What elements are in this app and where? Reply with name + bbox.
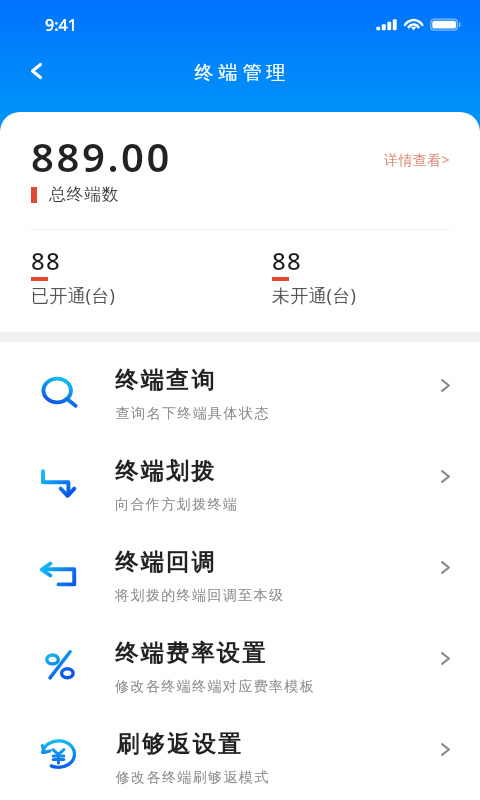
button[interactable]: 终端回调 <box>0 524 480 615</box>
staticText: 终端查询 <box>115 366 217 395</box>
staticText: 修改各终端终端对应费率模板 <box>115 678 316 696</box>
button[interactable]: 详情查看> <box>374 145 480 174</box>
staticText: 将划拨的终端回调至本级 <box>115 587 285 605</box>
button[interactable]: 终端费率设置 <box>0 615 480 706</box>
button[interactable]: 终端查询 <box>0 342 480 433</box>
staticText: 刷够返设置 <box>115 730 242 759</box>
button[interactable]: 终端划拨 <box>0 433 480 524</box>
staticText: 详情查看> <box>384 150 451 169</box>
staticText: 查询名下终端具体状态 <box>115 405 269 423</box>
staticText: 88 <box>31 244 61 277</box>
staticText: 已开通(台) <box>31 283 115 308</box>
staticText: 889.00 <box>31 129 173 183</box>
staticText: 88 <box>272 244 302 277</box>
staticText: 总终端数 <box>49 184 120 205</box>
staticText: 修改各终端刷够返模式 <box>115 769 269 787</box>
staticText: 9:41 <box>45 14 77 36</box>
staticText: 未开通(台) <box>272 283 356 308</box>
button[interactable]: 刷够返设置 <box>0 706 480 797</box>
staticText: 终端回调 <box>115 548 217 577</box>
staticText: 终端划拨 <box>115 457 217 486</box>
staticText: 向合作方划拨终端 <box>115 496 239 514</box>
staticText: 终端费率设置 <box>115 639 268 668</box>
button[interactable]: Back <box>12 57 56 101</box>
staticText: 终端管理 <box>192 61 288 85</box>
